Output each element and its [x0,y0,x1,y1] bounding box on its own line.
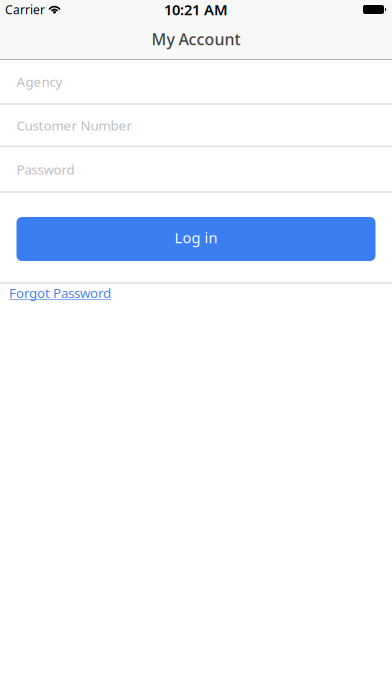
staticText: Password [16,160,74,178]
button[interactable]: Log in [16,217,375,261]
button[interactable]: Password [0,147,392,193]
staticText: 10:21 AM [164,0,228,19]
staticText: My Account [151,28,240,50]
staticText: Customer Number [16,116,132,134]
staticText: Carrier [5,1,45,17]
button[interactable]: Customer Number [0,105,392,147]
staticText: Forgot Password [9,284,111,302]
staticText: Agency [16,73,62,90]
staticText: Log in [174,228,217,247]
button[interactable]: Agency [0,60,392,105]
button[interactable]: Forgot Password [9,285,111,303]
